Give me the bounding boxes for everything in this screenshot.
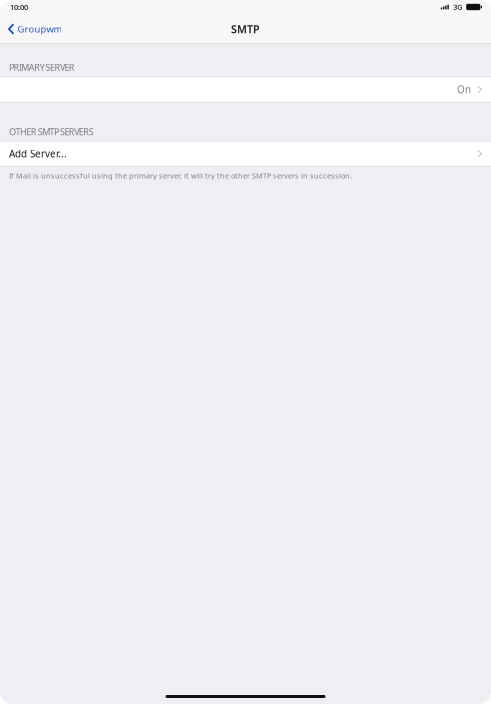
staticText: 10:00 [10,2,28,12]
staticText: OTHER SMTP SERVERS [9,126,94,138]
button[interactable]: Add Server... [0,141,491,166]
staticText: PRIMARY SERVER [9,61,75,73]
staticText: SMTP [231,22,260,36]
staticText: Groupwm [17,23,62,35]
staticText: If Mail is unsuccessful using the primar… [9,171,352,181]
staticText: On [457,83,471,96]
staticText: Add Server... [9,147,67,160]
staticText: 3G [453,2,462,12]
button[interactable]: Back to Groupwm [0,16,70,42]
button[interactable]: Primary server, On [0,77,491,102]
